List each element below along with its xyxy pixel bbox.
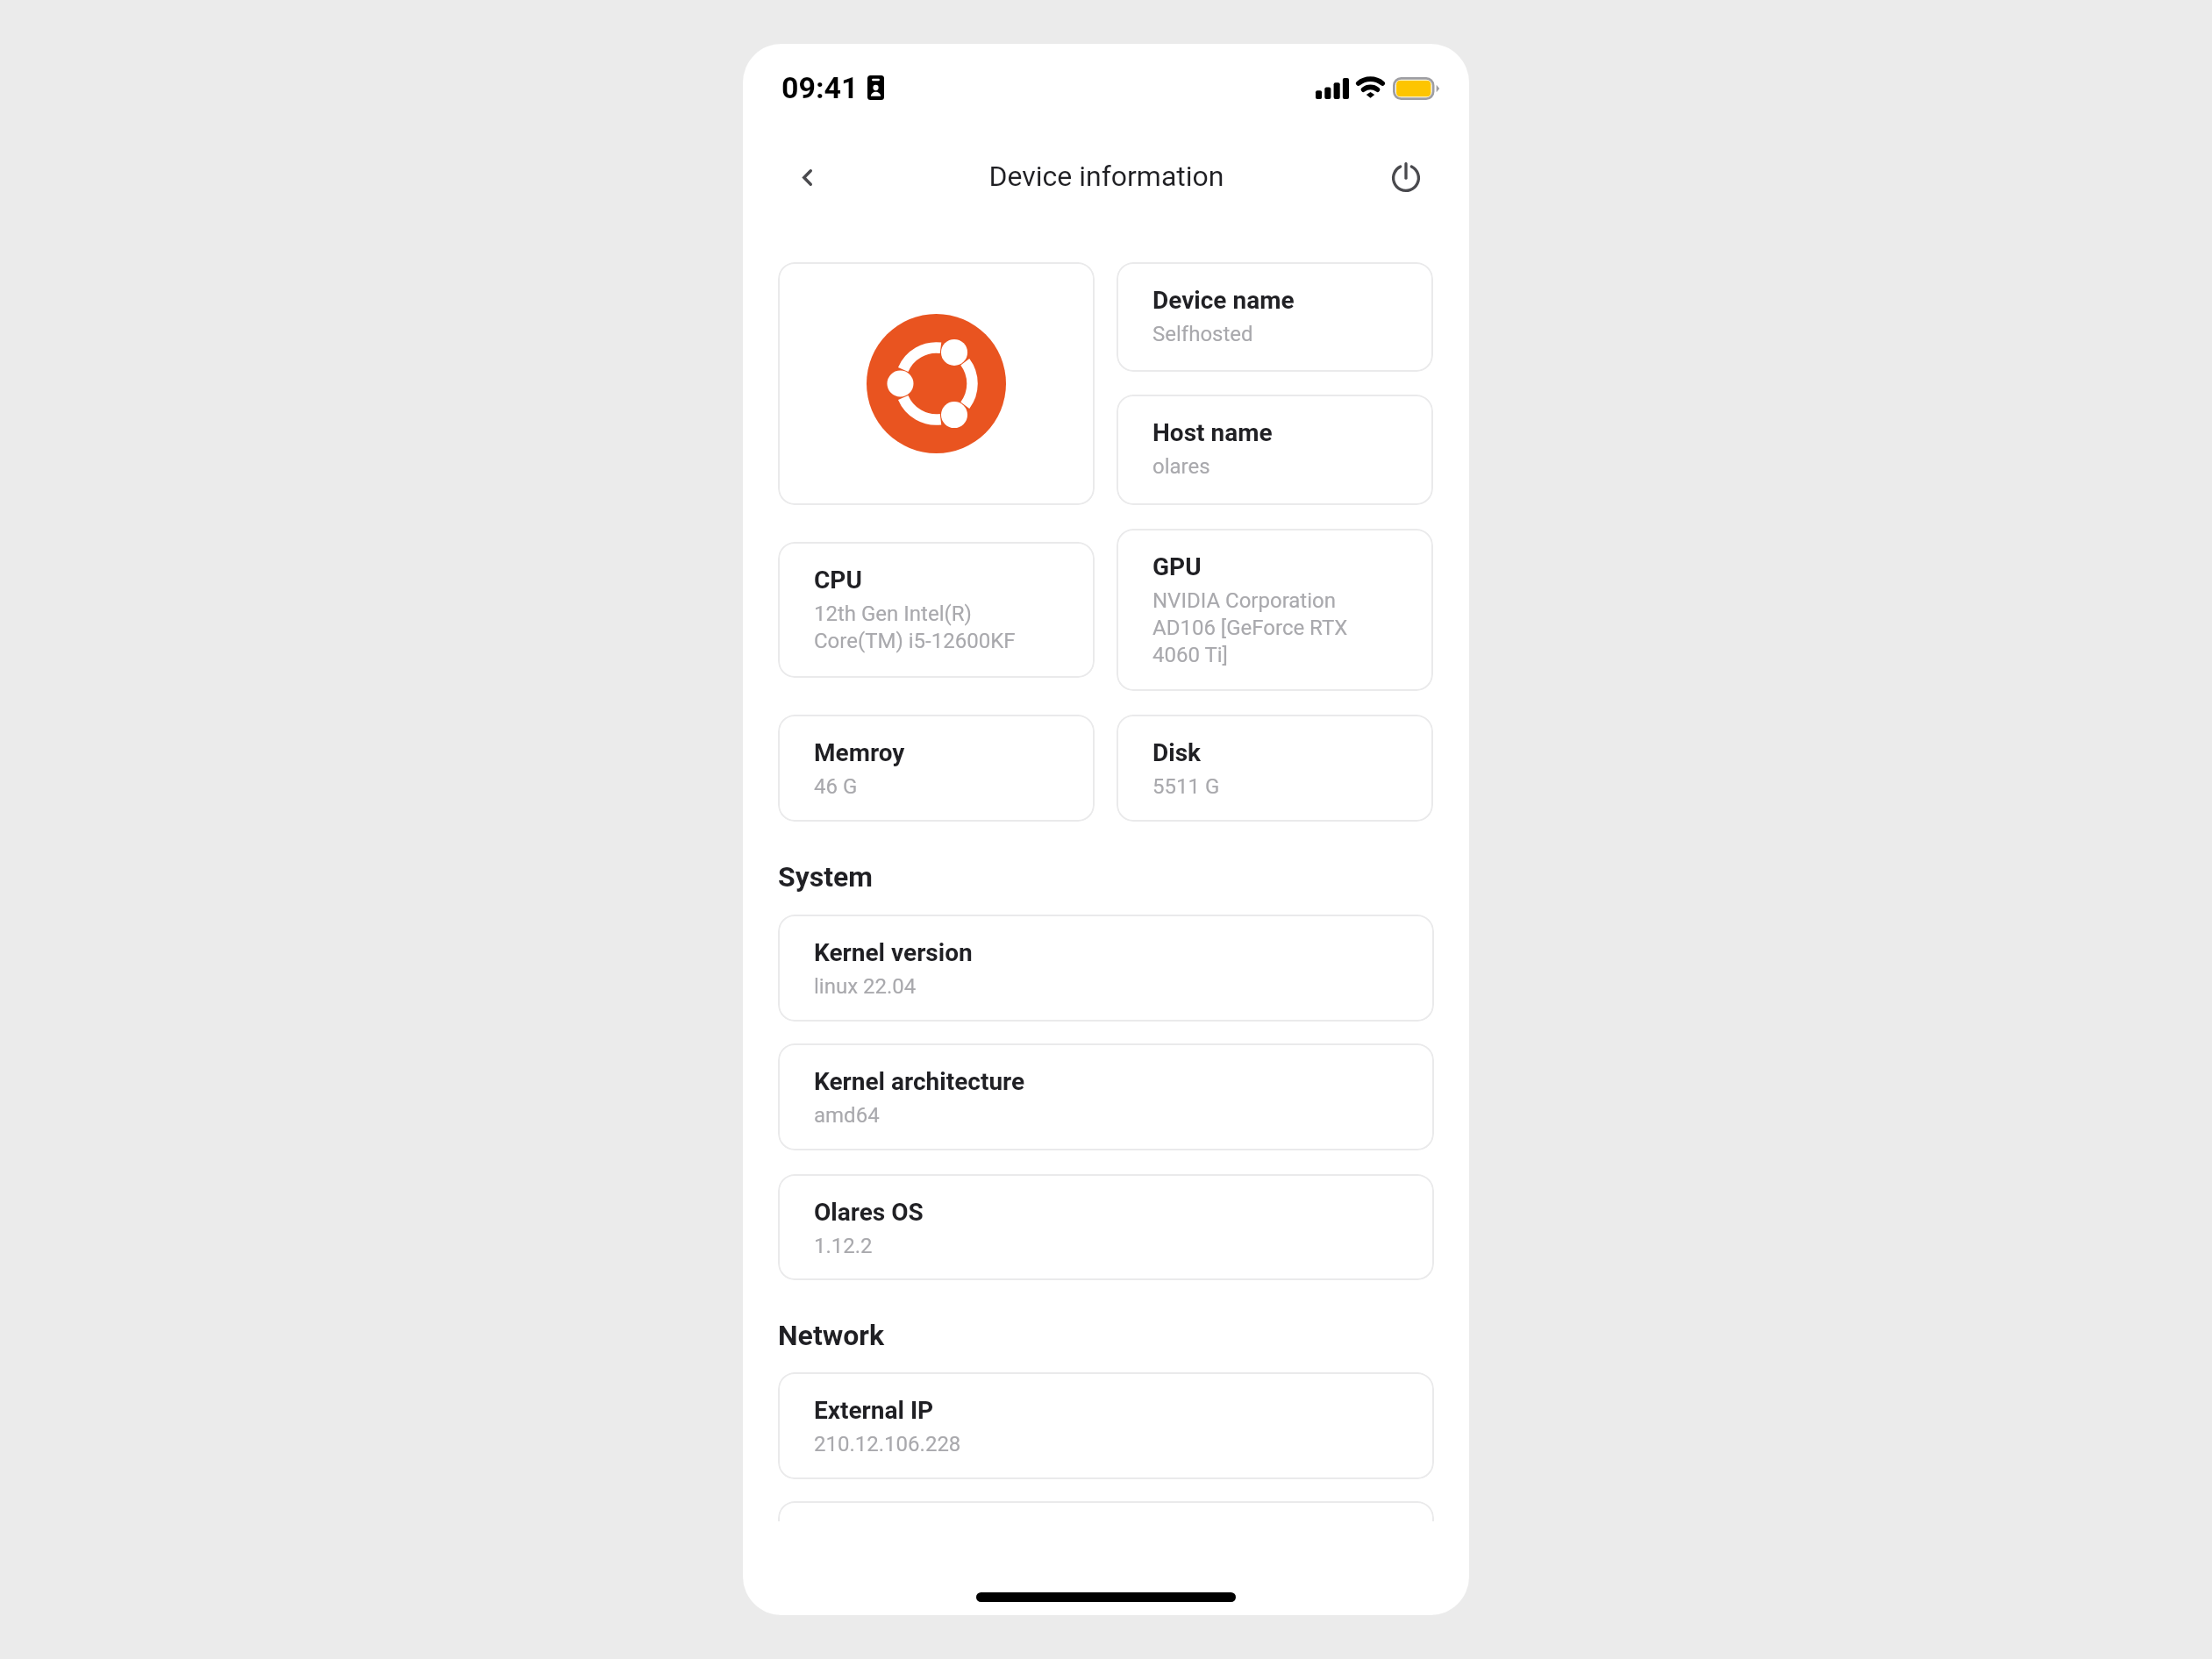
button[interactable]: Power xyxy=(1384,153,1428,196)
staticText: Memroy xyxy=(814,737,905,767)
button[interactable] xyxy=(778,1501,1434,1521)
staticText: 46 G xyxy=(814,772,858,799)
button[interactable]: Olares OS xyxy=(778,1174,1434,1280)
staticText: 5511 G xyxy=(1152,772,1220,799)
staticText: amd64 xyxy=(814,1100,880,1128)
staticText: Selfhosted xyxy=(1152,319,1253,346)
staticText: linux 22.04 xyxy=(814,972,917,999)
button[interactable]: Disk xyxy=(1117,715,1433,822)
button[interactable]: Back xyxy=(785,155,829,199)
staticText: External IP xyxy=(814,1395,934,1425)
staticText: System xyxy=(778,860,874,894)
staticText: Host name xyxy=(1152,417,1273,447)
staticText: Network xyxy=(778,1319,885,1352)
staticText: 210.12.106.228 xyxy=(814,1429,961,1456)
staticText: CPU xyxy=(814,565,862,595)
staticText: Device name xyxy=(1152,285,1295,315)
staticText: 09:41 xyxy=(781,70,859,105)
staticText: Kernel version xyxy=(814,937,973,967)
button[interactable]: GPU xyxy=(1117,529,1433,691)
staticText: NVIDIA Corporation AD106 [GeForce RTX 40… xyxy=(1152,586,1397,667)
staticText: Device information xyxy=(988,160,1224,193)
button[interactable]: Kernel version xyxy=(778,915,1434,1022)
staticText: 1.12.2 xyxy=(814,1231,873,1258)
staticText: Disk xyxy=(1152,737,1202,767)
button[interactable]: Host name xyxy=(1117,395,1433,505)
staticText: Kernel architecture xyxy=(814,1066,1025,1096)
button[interactable]: CPU xyxy=(778,542,1095,678)
staticText: 12th Gen Intel(R) Core(TM) i5-12600KF xyxy=(814,599,1059,653)
staticText: GPU xyxy=(1152,552,1202,581)
staticText: Olares OS xyxy=(814,1197,924,1227)
button[interactable]: Ubuntu logo xyxy=(778,262,1095,505)
button[interactable]: Device name xyxy=(1117,262,1433,372)
button[interactable]: Memroy xyxy=(778,715,1095,822)
button[interactable]: Kernel architecture xyxy=(778,1043,1434,1150)
staticText: olares xyxy=(1152,452,1210,479)
button[interactable]: External IP xyxy=(778,1372,1434,1479)
